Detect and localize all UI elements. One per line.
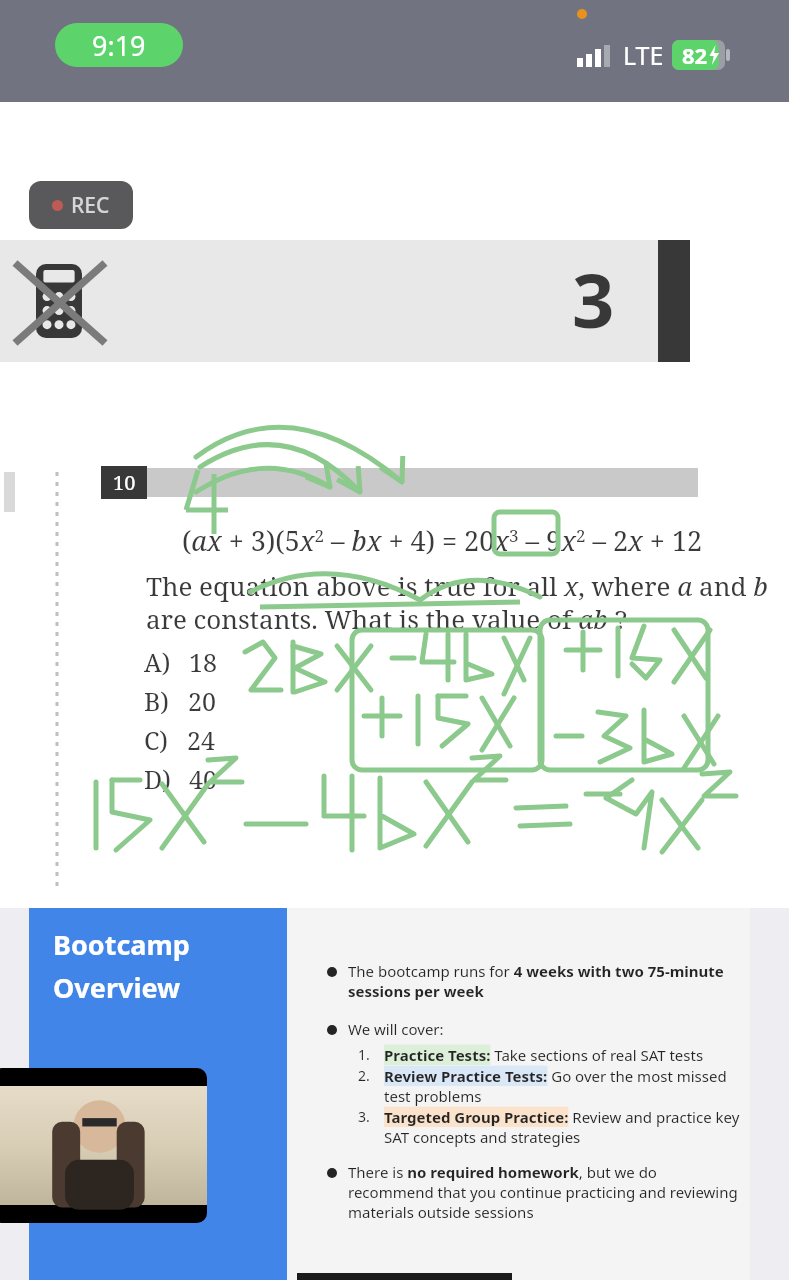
button[interactable]: C): [144, 722, 254, 758]
staticText: Review Practice Tests: Go over the most …: [384, 1066, 746, 1106]
button[interactable]: B): [144, 683, 254, 719]
staticText: B): [144, 684, 170, 718]
staticText: 9:19: [92, 27, 146, 64]
staticText: (ax + 3)(5x2 – bx + 4) = 20x3 – 9x2 – 2x…: [182, 522, 703, 559]
staticText: 40: [189, 762, 217, 796]
staticText: D): [144, 762, 171, 796]
staticText: C): [144, 723, 169, 757]
staticText: 18: [189, 645, 217, 679]
staticText: LTE: [623, 38, 664, 72]
staticText: 82: [682, 40, 708, 70]
button[interactable]: A): [144, 644, 254, 680]
staticText: are constants. What is the value of ab ?: [146, 601, 628, 636]
staticText: There is no required homework, but we do…: [348, 1162, 746, 1222]
staticText: 24: [187, 723, 215, 757]
staticText: 3: [572, 249, 615, 350]
staticText: 20: [188, 684, 216, 718]
staticText: A): [144, 645, 171, 679]
staticText: REC: [71, 191, 110, 220]
button[interactable]: D): [144, 761, 254, 797]
staticText: The bootcamp runs for 4 weeks with two 7…: [348, 961, 746, 1001]
staticText: 2.: [358, 1066, 384, 1085]
other: No calculator: [10, 251, 110, 351]
staticText: Overview: [53, 969, 181, 1006]
staticText: Practice Tests: Take sections of real SA…: [384, 1045, 704, 1065]
staticText: The equation above is true for all x, wh…: [146, 568, 768, 603]
staticText: 3.: [358, 1107, 384, 1126]
button[interactable]: 9:19: [55, 23, 183, 67]
staticText: 10: [113, 469, 136, 496]
button[interactable]: Presenter video: [0, 1068, 207, 1223]
button[interactable]: Recording: [29, 181, 133, 229]
staticText: Bootcamp: [53, 926, 190, 963]
staticText: Targeted Group Practice: Review and prac…: [384, 1107, 746, 1147]
staticText: We will cover:: [348, 1019, 444, 1039]
staticText: 1.: [358, 1045, 384, 1064]
